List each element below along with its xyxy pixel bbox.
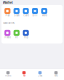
staticText: Home: [5, 74, 11, 77]
button[interactable]: More: [40, 8, 49, 17]
button[interactable]: Bill: [30, 8, 40, 17]
button[interactable]: Photo: [3, 30, 12, 39]
staticText: Pay: [22, 74, 25, 77]
button[interactable]: Trip: [21, 30, 30, 39]
staticText: Card: [23, 14, 28, 17]
button[interactable]: Home: [0, 71, 16, 78]
staticText: More: [42, 14, 47, 17]
button[interactable]: Pay: [16, 71, 32, 78]
button[interactable]: Fit: [12, 30, 21, 39]
staticText: Bill: [32, 14, 37, 17]
button[interactable]: Scan: [12, 8, 21, 17]
staticText: Me: [54, 74, 57, 77]
button[interactable]: Card: [21, 8, 30, 17]
button[interactable]: Chat: [32, 71, 48, 78]
staticText: Photo: [4, 36, 10, 39]
button[interactable]: Pay: [3, 8, 12, 17]
staticText: Scan: [14, 14, 19, 17]
staticText: Favourites: [3, 22, 14, 25]
staticText: Fit: [15, 36, 18, 39]
staticText: Trip: [24, 36, 28, 39]
button[interactable]: Me: [48, 71, 64, 78]
staticText: Wallet: [3, 0, 13, 5]
staticText: Chat: [37, 74, 42, 77]
staticText: Pay: [5, 14, 9, 17]
